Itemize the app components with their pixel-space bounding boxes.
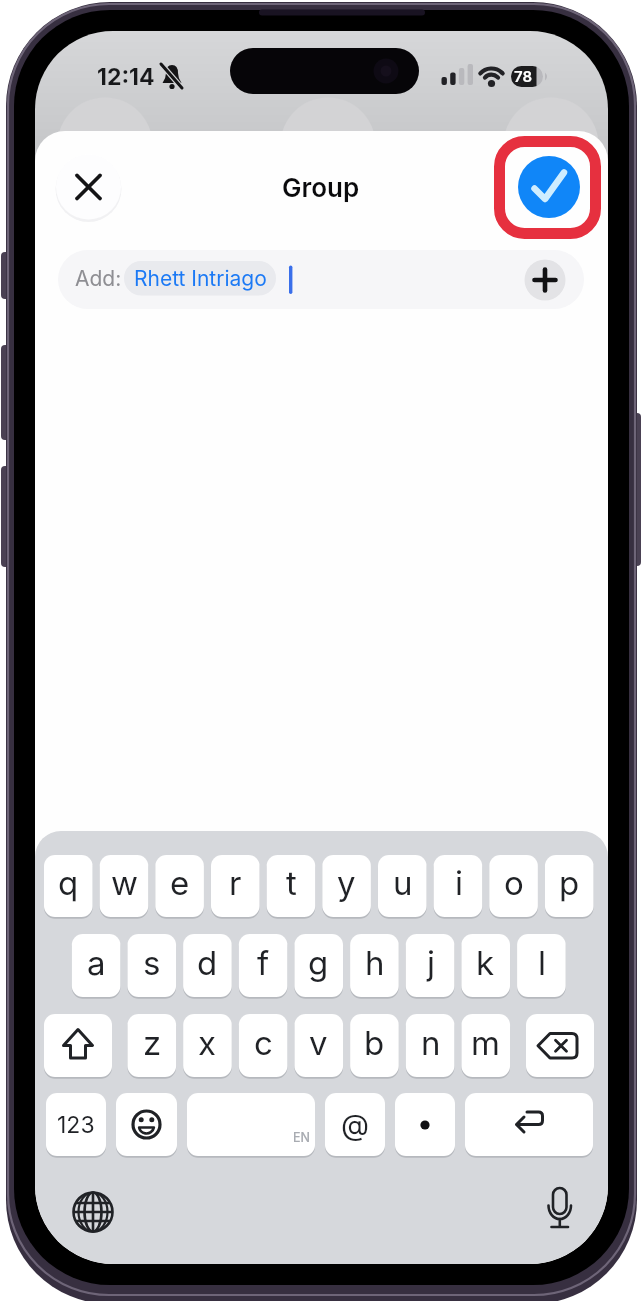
staticText: o bbox=[504, 863, 524, 903]
staticText: 78 bbox=[514, 67, 533, 85]
staticText: v bbox=[309, 1023, 328, 1063]
staticText: s bbox=[143, 943, 161, 983]
staticText: p bbox=[559, 863, 580, 903]
staticText: Add: bbox=[75, 266, 122, 291]
staticText: a bbox=[87, 943, 106, 983]
staticText: w bbox=[111, 863, 139, 903]
staticText: t bbox=[286, 863, 297, 903]
staticText: f bbox=[257, 943, 270, 983]
staticText: k bbox=[476, 943, 495, 983]
staticText: 123 bbox=[57, 1111, 95, 1139]
staticText: 12:14 bbox=[97, 63, 155, 91]
staticText: g bbox=[308, 943, 329, 983]
staticText: z bbox=[143, 1023, 162, 1063]
staticText: Rhett Intriago bbox=[134, 266, 267, 291]
staticText: h bbox=[365, 943, 385, 983]
staticText: b bbox=[364, 1023, 385, 1063]
staticText: l bbox=[538, 943, 546, 983]
staticText: EN bbox=[293, 1130, 310, 1145]
staticText: Group bbox=[282, 172, 360, 203]
staticText: i bbox=[455, 863, 463, 903]
staticText: r bbox=[229, 863, 242, 903]
staticText: j bbox=[427, 943, 435, 983]
staticText: x bbox=[198, 1023, 217, 1063]
staticText: m bbox=[471, 1023, 500, 1063]
staticText: @ bbox=[341, 1107, 370, 1142]
staticText: c bbox=[254, 1023, 273, 1063]
staticText: n bbox=[421, 1023, 441, 1063]
staticText: d bbox=[197, 943, 218, 983]
staticText: e bbox=[170, 863, 190, 903]
staticText: u bbox=[393, 863, 413, 903]
staticText: y bbox=[337, 863, 356, 903]
staticText: q bbox=[58, 863, 79, 903]
